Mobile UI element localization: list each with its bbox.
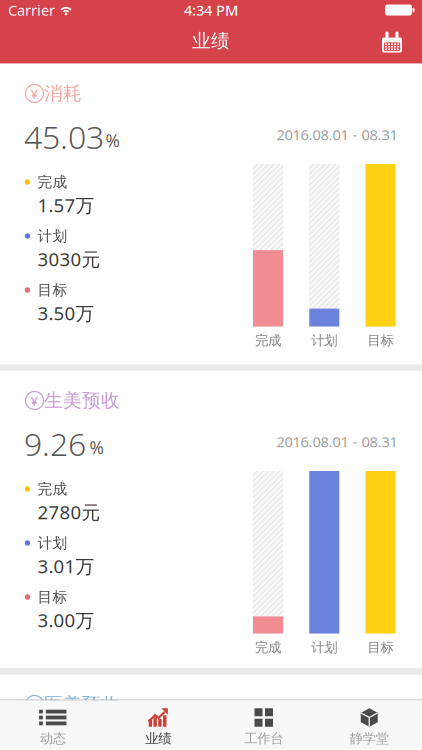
staticText: 消耗 [44, 82, 82, 105]
staticText: 完成 [37, 173, 67, 191]
staticText: 4:34 PM [184, 0, 238, 20]
staticText: 2016.08.01 - 08.31 [276, 125, 397, 144]
staticText: 目标 [368, 332, 394, 349]
staticText: ¥ [30, 85, 38, 102]
staticText: 3.00万 [37, 608, 94, 632]
staticText: 生美预收 [44, 389, 120, 412]
staticText: 计划 [37, 534, 67, 552]
staticText: % [89, 436, 103, 459]
staticText: ¥ [30, 696, 38, 713]
button[interactable]: 业绩 [105, 700, 211, 749]
staticText: 完成 [255, 332, 281, 349]
button[interactable]: 静学堂 [316, 700, 422, 749]
staticText: 目标 [368, 639, 394, 656]
staticText: Carrier [8, 0, 55, 20]
staticText: 完成 [255, 639, 281, 656]
staticText: 9.26 [24, 422, 86, 465]
staticText: 3030元 [37, 247, 100, 271]
staticText: 业绩 [145, 730, 171, 747]
staticText: 目标 [37, 588, 67, 606]
staticText: 目标 [37, 281, 67, 299]
staticText: 2780元 [37, 500, 100, 524]
button[interactable]: 动态 [0, 700, 105, 749]
staticText: 计划 [311, 332, 337, 349]
staticText: % [105, 129, 119, 152]
staticText: 3.01万 [37, 554, 94, 578]
staticText: 静学堂 [350, 730, 389, 747]
staticText: 业绩 [192, 29, 230, 52]
staticText: 1.57万 [37, 193, 94, 217]
staticText: 2016.08.01 - 08.31 [276, 432, 397, 451]
button[interactable]: Calendar [370, 19, 414, 63]
button[interactable]: 工作台 [211, 700, 316, 749]
staticText: 医美预收 [44, 693, 120, 716]
staticText: ¥ [30, 392, 38, 409]
staticText: 完成 [37, 480, 67, 498]
staticText: 计划 [37, 227, 67, 245]
staticText: 45.03 [24, 115, 104, 158]
staticText: 3.50万 [37, 301, 94, 325]
staticText: 动态 [40, 730, 66, 747]
staticText: 工作台 [244, 730, 283, 747]
staticText: 计划 [311, 639, 337, 656]
